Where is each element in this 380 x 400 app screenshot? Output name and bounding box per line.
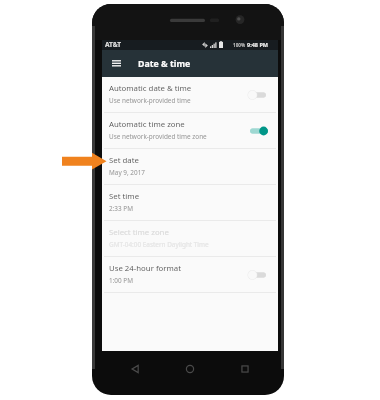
staticText: Select time zone: [109, 227, 169, 238]
staticText: 9:48 PM: [247, 41, 269, 48]
button[interactable]: Set time: [102, 185, 278, 221]
button[interactable]: Set date: [102, 149, 278, 185]
button[interactable]: Open navigation menu: [107, 53, 122, 73]
staticText: GMT-04:00 Eastern Daylight Time: [109, 240, 209, 249]
staticText: AT&T: [105, 40, 122, 49]
staticText: May 9, 2017: [109, 168, 145, 177]
staticText: Date & time: [138, 58, 191, 70]
staticText: Set date: [109, 155, 139, 166]
button[interactable]: Automatic time zone: [102, 113, 278, 149]
staticText: 100%: [233, 42, 246, 48]
button[interactable]: Select time zone: [102, 221, 278, 257]
staticText: Use network-provided time zone: [109, 132, 207, 141]
staticText: Automatic time zone: [109, 119, 185, 130]
staticText: 1:00 PM: [109, 276, 134, 285]
button[interactable]: Automatic date & time: [102, 77, 278, 113]
staticText: Automatic date & time: [109, 83, 192, 94]
staticText: Use 24-hour format: [109, 263, 181, 274]
staticText: 2:33 PM: [109, 204, 134, 213]
staticText: Use network-provided time: [109, 96, 191, 105]
staticText: Set time: [109, 191, 140, 202]
button[interactable]: Home: [156, 351, 220, 385]
button[interactable]: Recent apps: [220, 351, 284, 385]
button[interactable]: Back: [92, 351, 156, 385]
button[interactable]: Use 24-hour format: [102, 257, 278, 293]
